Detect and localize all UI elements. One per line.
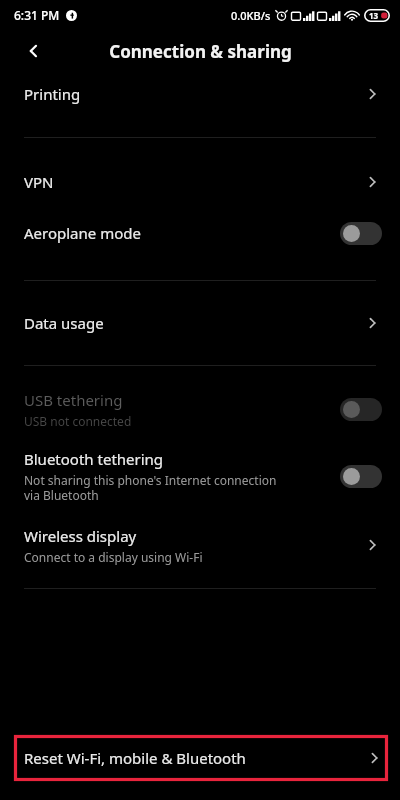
staticText: USB not connected xyxy=(24,413,132,429)
staticText: 6:31 PM xyxy=(14,7,60,23)
staticText: Not sharing this phone's Internet connec… xyxy=(24,472,277,503)
button[interactable]: Reset Wi-Fi, mobile & Bluetooth xyxy=(14,735,388,781)
staticText: Reset Wi-Fi, mobile & Bluetooth xyxy=(24,748,364,768)
button[interactable] xyxy=(340,222,382,245)
staticText: USB tethering xyxy=(24,390,123,410)
staticText: VPN xyxy=(24,172,54,192)
button[interactable]: Aeroplane mode xyxy=(0,205,400,261)
button[interactable]: Data usage xyxy=(0,299,400,347)
staticText: Printing xyxy=(24,84,81,104)
staticText: Bluetooth tethering xyxy=(24,449,164,469)
staticText: 0.0KB/s xyxy=(231,8,271,23)
button[interactable]: VPN xyxy=(0,159,400,205)
button[interactable]: Printing xyxy=(0,72,400,116)
staticText: Aeroplane mode xyxy=(24,223,141,243)
button[interactable]: USB tethering xyxy=(0,380,400,438)
staticText: Wireless display xyxy=(24,526,137,546)
staticText: Data usage xyxy=(24,313,104,333)
button[interactable] xyxy=(340,398,382,421)
button[interactable]: Wireless display xyxy=(0,514,400,576)
button[interactable]: Bluetooth tethering xyxy=(0,438,400,514)
staticText: Connection & sharing xyxy=(109,40,292,63)
staticText: 13 xyxy=(369,10,379,21)
staticText: Connect to a display using Wi-Fi xyxy=(24,549,203,565)
button[interactable] xyxy=(340,465,382,488)
button[interactable]: Back xyxy=(18,35,50,67)
